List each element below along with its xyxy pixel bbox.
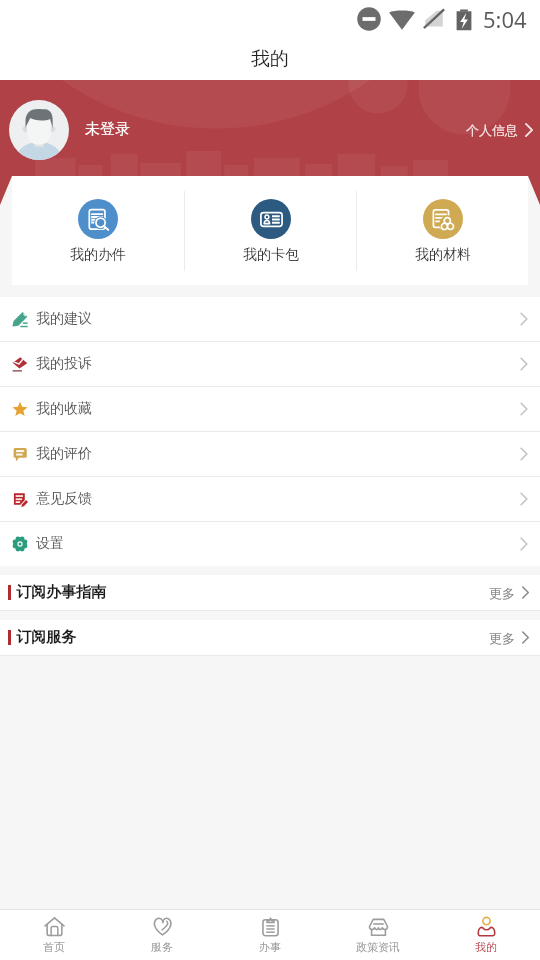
staticText: 首页 xyxy=(43,940,65,954)
button[interactable]: 服务 xyxy=(108,910,216,960)
button[interactable]: 设置 xyxy=(0,522,540,566)
button[interactable]: 首页 xyxy=(0,910,108,960)
staticText: 意见反馈 xyxy=(36,490,92,508)
button[interactable]: 我的收藏 xyxy=(0,387,540,431)
staticText: 我的投诉 xyxy=(36,355,92,373)
staticText: 更多 xyxy=(489,585,515,601)
button[interactable]: 个人信息 xyxy=(464,116,538,144)
staticText: 我的卡包 xyxy=(243,246,299,264)
button[interactable]: 我的投诉 xyxy=(0,342,540,386)
button[interactable]: 意见反馈 xyxy=(0,477,540,521)
button[interactable]: 我的评价 xyxy=(0,432,540,476)
button[interactable]: 订阅办事指南 xyxy=(0,575,540,610)
button[interactable]: 我的卡包 xyxy=(185,176,356,285)
staticText: 政策资讯 xyxy=(356,940,400,954)
staticText: 订阅办事指南 xyxy=(16,583,106,602)
staticText: 我的 xyxy=(475,940,497,954)
staticText: 我的 xyxy=(251,47,289,71)
button[interactable]: 订阅服务 xyxy=(0,620,540,655)
staticText: 个人信息 xyxy=(466,122,518,138)
button[interactable]: 我的办件 xyxy=(12,176,184,285)
staticText: 我的收藏 xyxy=(36,400,92,418)
button[interactable]: 我的建议 xyxy=(0,297,540,341)
staticText: 我的建议 xyxy=(36,310,92,328)
staticText: 5:04 xyxy=(483,4,527,34)
staticText: 订阅服务 xyxy=(16,628,76,647)
staticText: 我的办件 xyxy=(70,246,126,264)
staticText: 设置 xyxy=(36,535,64,553)
staticText: 办事 xyxy=(259,940,281,954)
staticText: 更多 xyxy=(489,630,515,646)
button[interactable]: 我的材料 xyxy=(357,176,528,285)
staticText: 服务 xyxy=(151,940,173,954)
button[interactable]: 政策资讯 xyxy=(324,910,432,960)
staticText: 我的材料 xyxy=(415,246,471,264)
button[interactable]: 办事 xyxy=(216,910,324,960)
staticText: 我的评价 xyxy=(36,445,92,463)
button[interactable]: 我的 xyxy=(432,910,540,960)
staticText: 未登录 xyxy=(85,120,130,139)
